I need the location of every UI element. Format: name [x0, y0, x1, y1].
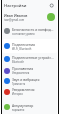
button[interactable]: Безопасность и конфиденциальность [2, 26, 57, 36]
staticText: Безопасность и конфиденциальность [12, 27, 55, 32]
staticText: Звук и вибрация [12, 77, 40, 82]
button[interactable]: Иван Иванов [2, 11, 57, 23]
button[interactable]: Search [49, 3, 55, 9]
button[interactable]: Уведомления [2, 86, 57, 97]
staticText: Иван Иванов [4, 13, 28, 18]
button[interactable]: Звук и вибрация [2, 76, 57, 86]
button[interactable]: Аккумулятор [2, 102, 57, 112]
button[interactable]: Подключения [2, 39, 57, 53]
staticText: заряжено [12, 108, 25, 112]
staticText: Подключенные устройства [12, 55, 55, 60]
staticText: История [12, 92, 23, 96]
staticText: Громкость [12, 82, 26, 86]
staticText: состояние уровня [12, 32, 35, 36]
staticText: Приложения [12, 66, 34, 71]
staticText: Уведомления [12, 71, 30, 75]
staticText: Уведомления [12, 87, 35, 92]
staticText: Аккумулятор [12, 103, 34, 108]
staticText: ivan@gmail.com [4, 18, 25, 22]
button[interactable]: Приложения [2, 65, 57, 76]
staticText: Bluetooth [12, 60, 25, 64]
staticText: Wi-Fi, Bluetooth [12, 47, 32, 51]
staticText: Подключения [12, 42, 35, 47]
button[interactable]: Подключенные устройства [2, 53, 57, 65]
staticText: Настройки [4, 3, 27, 9]
